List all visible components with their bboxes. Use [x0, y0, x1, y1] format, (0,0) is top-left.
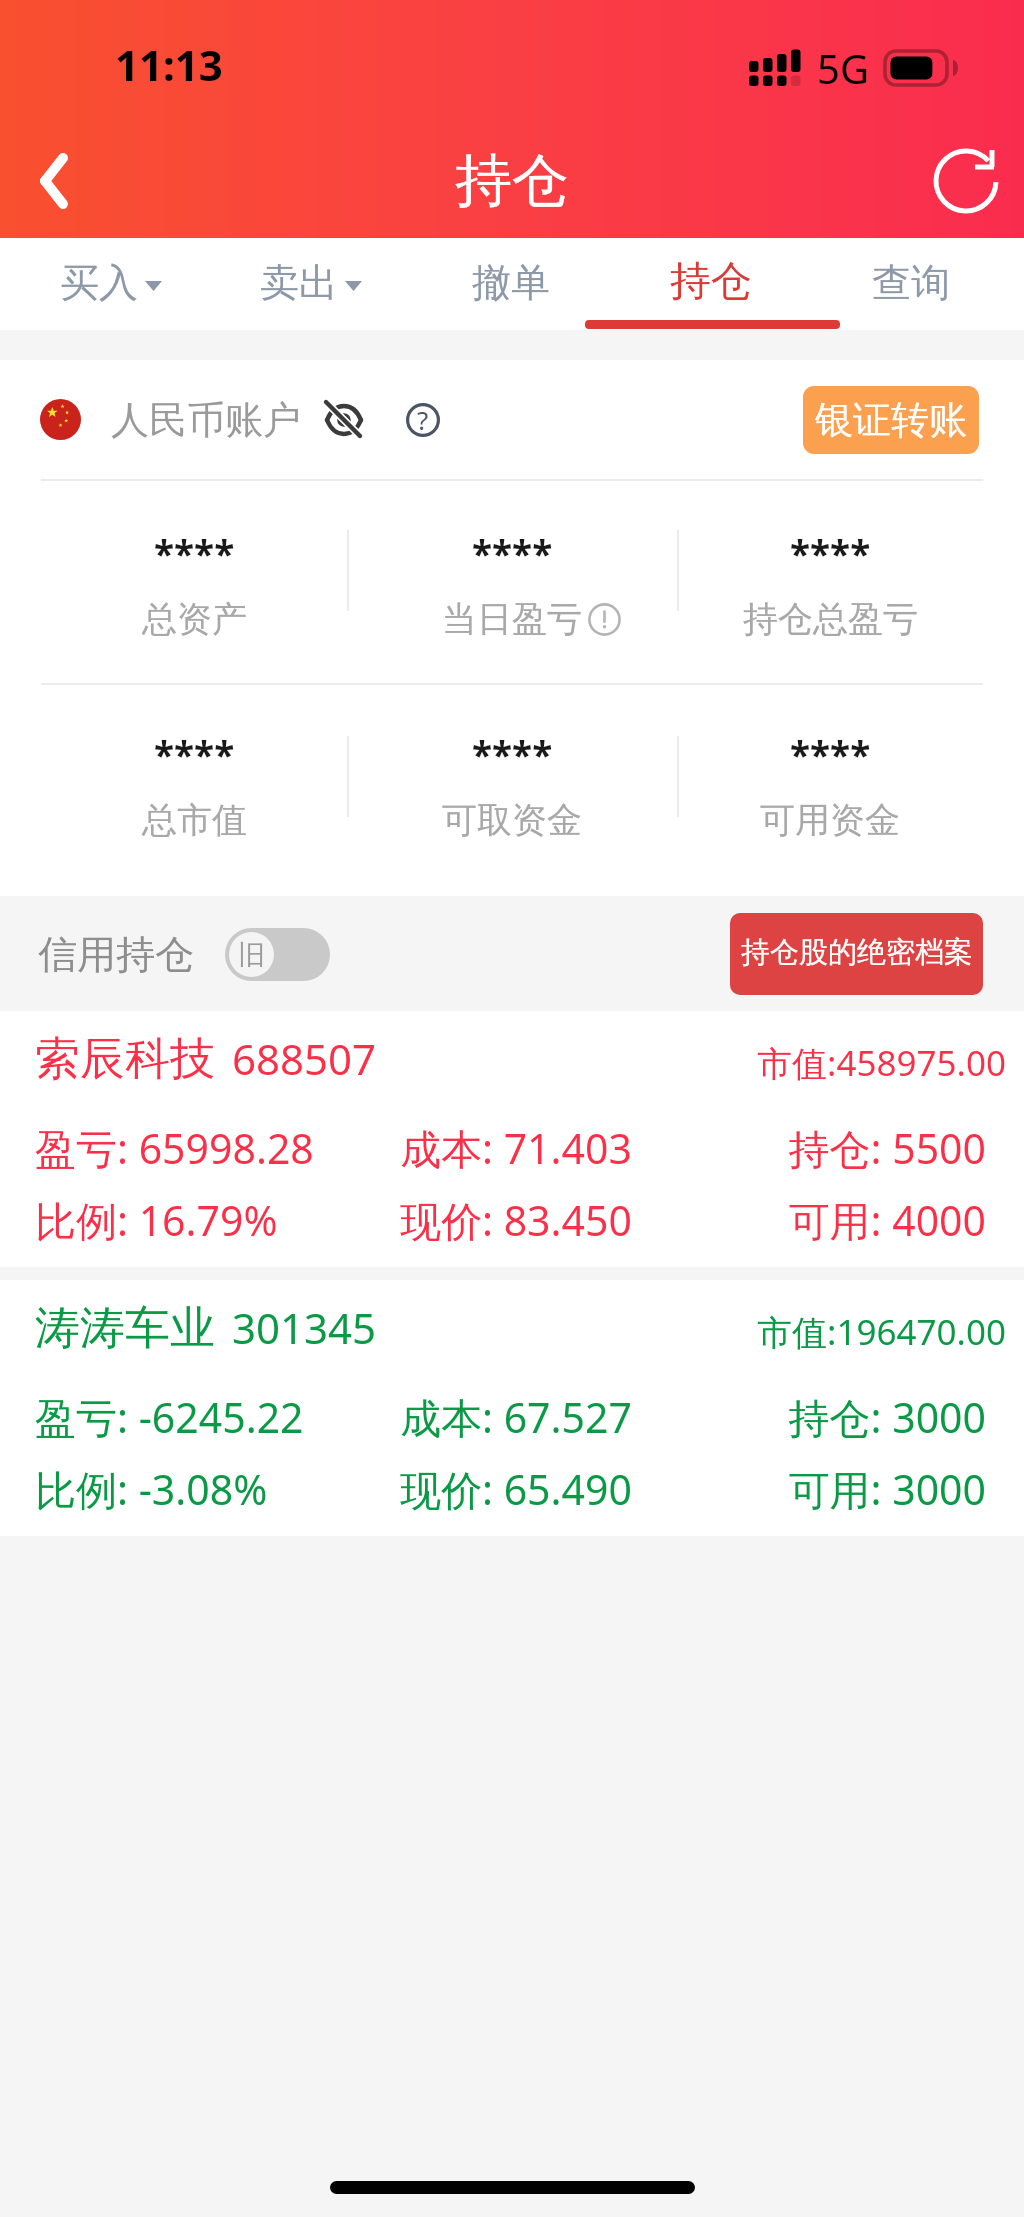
staticText: 成本: 67.527 [400, 1389, 632, 1445]
staticText: 信用持仓 [38, 930, 194, 979]
staticText: **** [154, 729, 235, 779]
button[interactable]: Refresh [916, 131, 1016, 231]
staticText: 买入 [60, 258, 138, 307]
button[interactable]: **** [660, 729, 1000, 859]
staticText: 可用资金 [760, 798, 900, 842]
staticText: 5G [817, 41, 869, 95]
staticText: 比例: 16.79% [35, 1192, 278, 1248]
staticText: 银证转账 [815, 396, 967, 444]
staticText: 可用: 3000 [786, 1461, 986, 1517]
staticText: 301345 [232, 1299, 377, 1356]
button[interactable]: 查询 [811, 238, 1011, 330]
button[interactable]: Help [400, 397, 446, 443]
staticText: **** [472, 729, 553, 779]
staticText: 持仓 [455, 145, 569, 217]
button[interactable]: 索辰科技 [0, 1011, 1024, 1267]
button[interactable]: 涛涛车业 [0, 1280, 1024, 1536]
staticText: 688507 [232, 1030, 377, 1087]
button[interactable]: Switch to old view [225, 928, 330, 981]
staticText: 卖出 [260, 258, 338, 307]
button[interactable]: **** [342, 528, 682, 658]
staticText: 现价: 83.450 [400, 1192, 632, 1248]
staticText: 持仓 [670, 256, 752, 308]
staticText: 市值:196470.00 [757, 1308, 1006, 1356]
button[interactable]: 卖出 [211, 238, 411, 330]
staticText: 持仓: 5500 [786, 1120, 986, 1176]
staticText: ? [417, 402, 429, 437]
staticText: 总资产 [142, 597, 247, 641]
staticText: **** [790, 528, 871, 578]
button[interactable]: Hide amounts [318, 394, 370, 446]
staticText: 查询 [872, 258, 950, 307]
staticText: 比例: -3.08% [35, 1461, 268, 1517]
button[interactable]: Back [0, 131, 100, 231]
staticText: 市值:458975.00 [757, 1039, 1006, 1087]
button[interactable]: **** [660, 528, 1000, 658]
staticText: 成本: 71.403 [400, 1120, 632, 1176]
staticText: 索辰科技 [35, 1031, 215, 1088]
staticText: 撤单 [472, 258, 550, 307]
staticText: 持仓总盈亏 [743, 597, 918, 641]
staticText: 涛涛车业 [35, 1300, 215, 1357]
staticText: 总市值 [142, 798, 247, 842]
staticText: **** [472, 528, 553, 578]
button[interactable]: 持仓 [611, 238, 811, 330]
button[interactable]: 撤单 [411, 238, 611, 330]
staticText: **** [790, 729, 871, 779]
staticText: 当日盈亏 [442, 597, 582, 641]
staticText: **** [154, 528, 235, 578]
staticText: 盈亏: 65998.28 [35, 1120, 314, 1176]
button[interactable]: 银证转账 [803, 386, 979, 454]
button[interactable]: 买入 [11, 238, 211, 330]
button[interactable]: **** [24, 729, 364, 859]
staticText: 11:13 [115, 36, 223, 93]
staticText: 人民币账户 [111, 396, 301, 444]
staticText: 旧 [238, 938, 265, 972]
staticText: 持仓股的绝密档案 [741, 934, 973, 971]
staticText: 可用: 4000 [786, 1192, 986, 1248]
staticText: 现价: 65.490 [400, 1461, 632, 1517]
button[interactable]: 持仓股的绝密档案 [730, 913, 983, 995]
button[interactable]: **** [24, 528, 364, 658]
staticText: 可取资金 [442, 798, 582, 842]
staticText: 持仓: 3000 [786, 1389, 986, 1445]
button[interactable]: **** [342, 729, 682, 859]
staticText: 盈亏: -6245.22 [35, 1389, 304, 1445]
